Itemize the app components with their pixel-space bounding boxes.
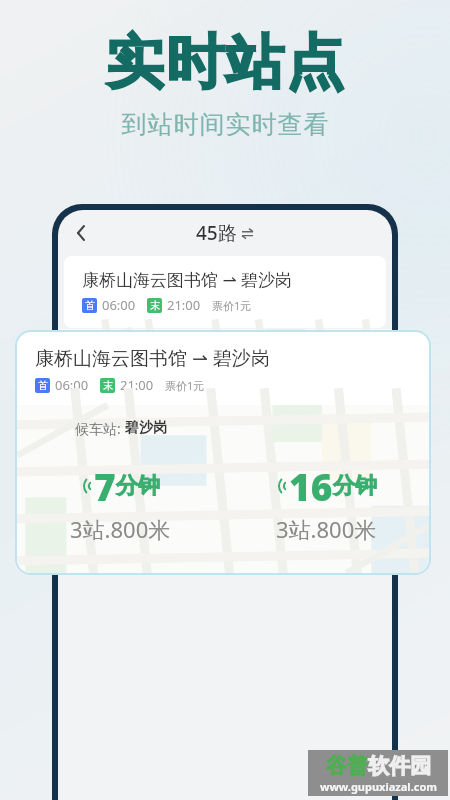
staticText: 柏: [182, 460, 196, 478]
staticText: 首: [38, 379, 48, 392]
staticText: 到站时间实时查看: [121, 109, 329, 140]
staticText: 06:00: [55, 376, 89, 394]
staticText: 3站.800米: [276, 514, 377, 544]
staticText: 谷普: [326, 753, 368, 779]
staticText: 山: [284, 460, 298, 478]
staticText: 站: [184, 429, 194, 442]
button[interactable]: Back: [64, 216, 98, 250]
staticText: 康桥山海云图书馆 ⇀ 碧沙岗: [82, 268, 293, 291]
staticText: 四: [216, 429, 230, 447]
button[interactable]: 7: [17, 461, 223, 544]
staticText: 湖: [114, 478, 128, 496]
staticText: 岭: [148, 460, 162, 478]
staticText: 碧沙岗: [125, 419, 167, 437]
staticText: 21:00: [167, 296, 201, 314]
staticText: 16: [289, 461, 333, 511]
button[interactable]: 康桥山海云图书馆 ⇀ 碧沙岗: [15, 330, 431, 575]
staticText: 票价1元: [212, 298, 252, 313]
button[interactable]: 16: [223, 461, 429, 544]
staticText: 路: [114, 496, 128, 514]
staticText: 3站.800米: [70, 514, 171, 544]
staticText: 站: [150, 429, 160, 442]
staticText: 分钟: [333, 472, 377, 500]
staticText: 末: [150, 299, 160, 312]
staticText: 站: [116, 429, 126, 442]
staticText: 06:00: [102, 296, 136, 314]
staticText: 21:00: [120, 376, 154, 394]
button[interactable]: 康桥山海云图书馆 ⇀ 碧沙岗: [64, 256, 386, 328]
staticText: 软件园: [368, 753, 431, 779]
staticText: 康桥山海云图书馆 ⇀ 碧沙岗: [35, 345, 270, 371]
staticText: 7: [94, 461, 116, 511]
staticText: 票价1元: [165, 378, 205, 393]
staticText: 路: [182, 478, 196, 496]
staticText: 冉: [80, 442, 94, 460]
staticText: 站: [82, 429, 92, 442]
staticText: 末: [103, 379, 113, 392]
button[interactable]: 45路: [196, 220, 254, 246]
staticText: 45路: [196, 220, 237, 246]
staticText: 流: [114, 460, 128, 478]
staticText: 屯: [80, 460, 94, 478]
staticText: www.gupuxiazal.com: [320, 779, 437, 794]
staticText: 路: [216, 447, 230, 465]
staticText: 山: [250, 460, 264, 478]
staticText: 候车站:: [75, 419, 125, 438]
staticText: 首: [85, 299, 95, 312]
staticText: 路: [284, 478, 298, 496]
staticText: 冈: [318, 429, 332, 447]
staticText: 实时站点: [105, 26, 345, 99]
staticText: 路: [148, 478, 162, 496]
staticText: 路: [80, 478, 94, 496]
staticText: 分钟: [116, 472, 160, 500]
